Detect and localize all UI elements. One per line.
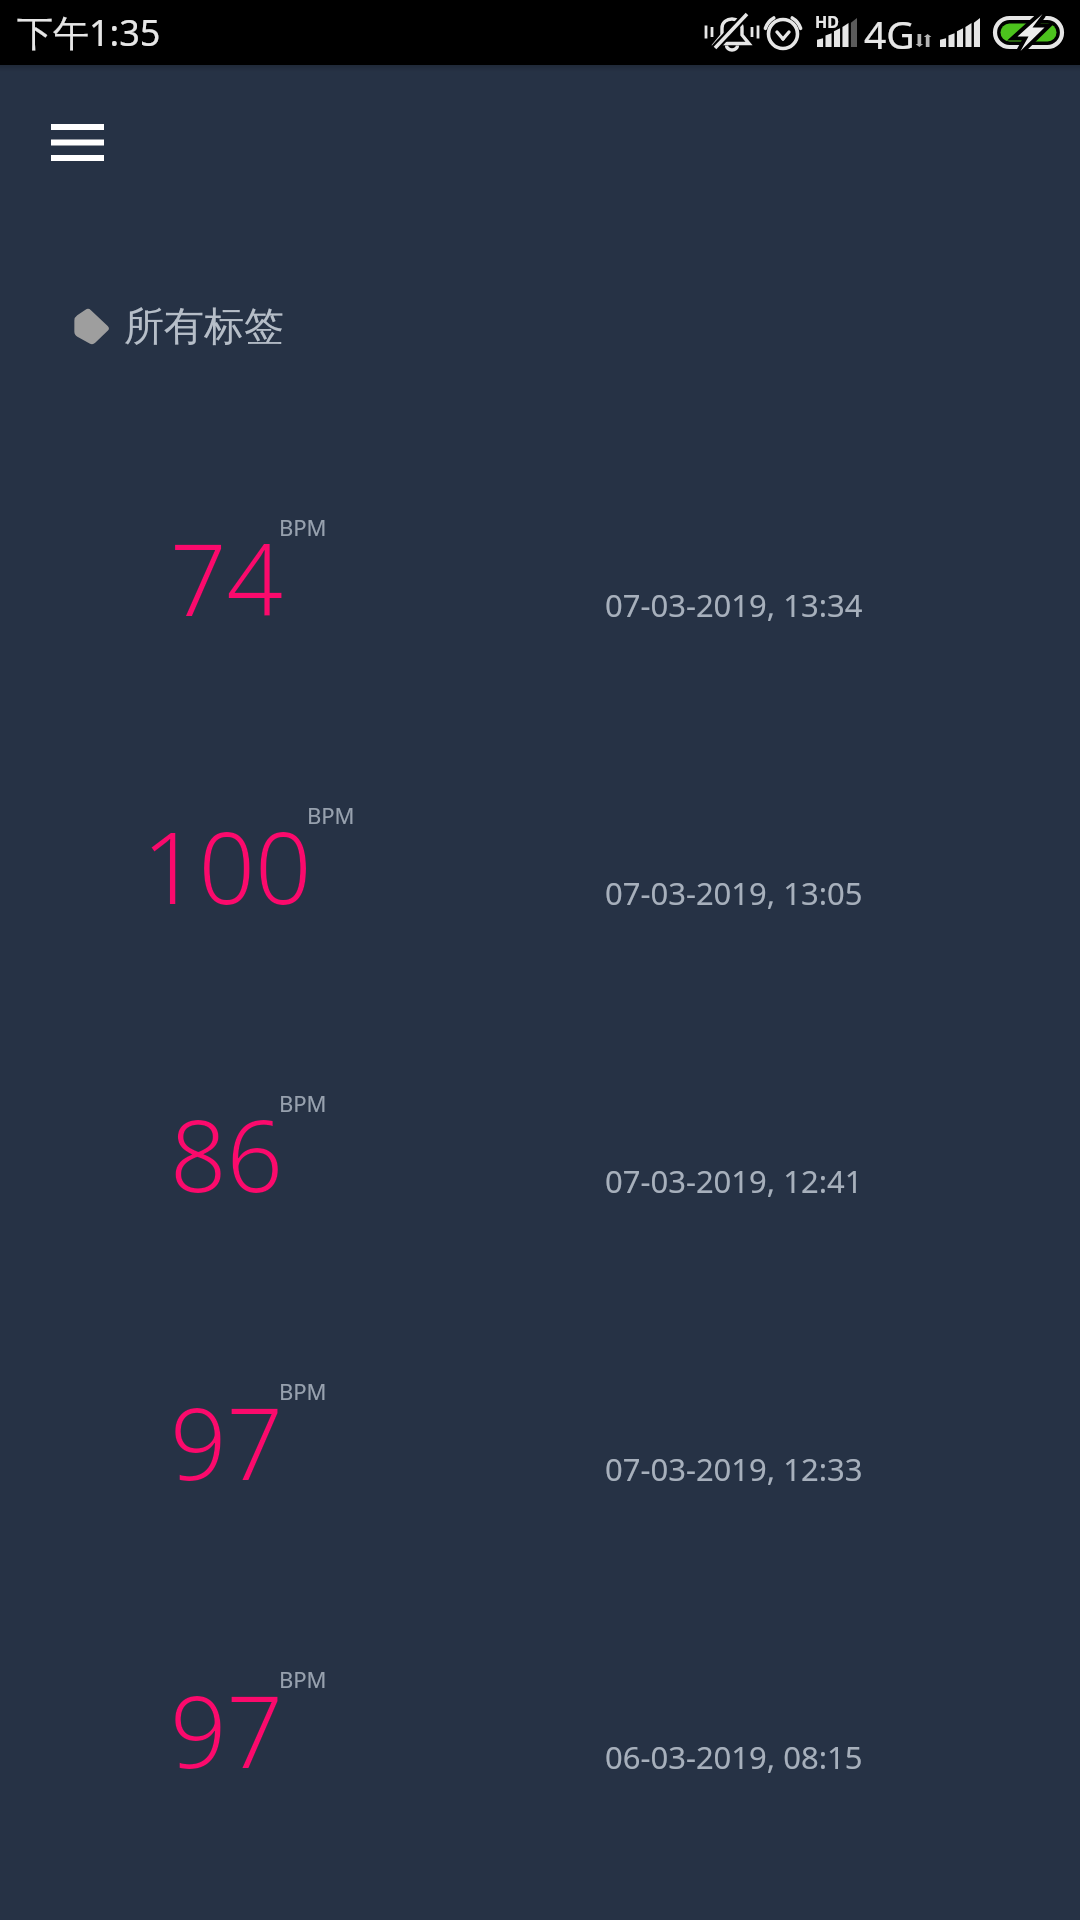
staticText: BPM	[307, 800, 355, 830]
staticText: 07-03-2019, 12:33	[605, 1448, 863, 1490]
button[interactable]: 86	[0, 1013, 1080, 1301]
staticText: 07-03-2019, 13:34	[605, 584, 863, 626]
staticText: 4G	[864, 7, 915, 60]
button[interactable]: 74	[0, 437, 1080, 725]
button[interactable]: 97	[0, 1301, 1080, 1589]
staticText: HD	[815, 11, 839, 33]
staticText: 07-03-2019, 12:41	[605, 1160, 863, 1202]
button[interactable]: 97	[0, 1589, 1080, 1877]
button[interactable]: Menu	[26, 96, 128, 188]
staticText: 74	[170, 510, 284, 645]
button[interactable]: 100	[0, 725, 1080, 1013]
staticText: 97	[170, 1662, 284, 1797]
staticText: 97	[170, 1374, 284, 1509]
staticText: 所有标签	[124, 301, 284, 351]
staticText: 07-03-2019, 13:05	[605, 872, 863, 914]
staticText: 06-03-2019, 08:15	[605, 1736, 863, 1778]
staticText: 100	[142, 798, 312, 933]
staticText: 86	[170, 1086, 284, 1221]
staticText: 下午1:35	[17, 8, 161, 57]
staticText: BPM	[279, 1376, 327, 1406]
staticText: BPM	[279, 1088, 327, 1118]
button[interactable]: 所有标签	[72, 296, 284, 356]
staticText: BPM	[279, 1664, 327, 1694]
staticText: BPM	[279, 512, 327, 542]
